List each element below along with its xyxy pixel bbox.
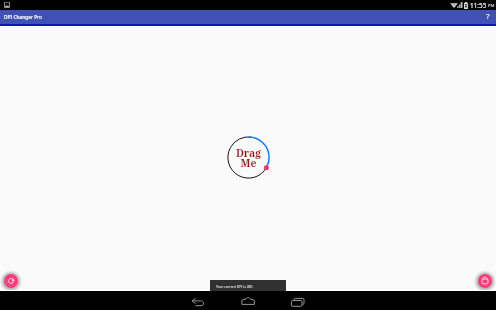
button[interactable]: Drag to change DPI bbox=[226, 135, 271, 180]
staticText: Drag Me bbox=[226, 146, 271, 191]
staticText: Your current DPI is 280 bbox=[216, 284, 253, 289]
button[interactable]: Reset DPI bbox=[4, 274, 18, 288]
button[interactable]: Home bbox=[241, 295, 257, 307]
button[interactable]: Apply DPI bbox=[478, 274, 492, 288]
staticText: DPI Changer Pro bbox=[4, 14, 42, 21]
button[interactable]: Recents bbox=[290, 296, 306, 308]
staticText: ? bbox=[486, 11, 490, 21]
staticText: 11:55 bbox=[470, 1, 487, 10]
button[interactable]: Help bbox=[480, 10, 494, 24]
staticText: PM bbox=[488, 3, 495, 9]
button[interactable]: Back bbox=[190, 298, 206, 310]
